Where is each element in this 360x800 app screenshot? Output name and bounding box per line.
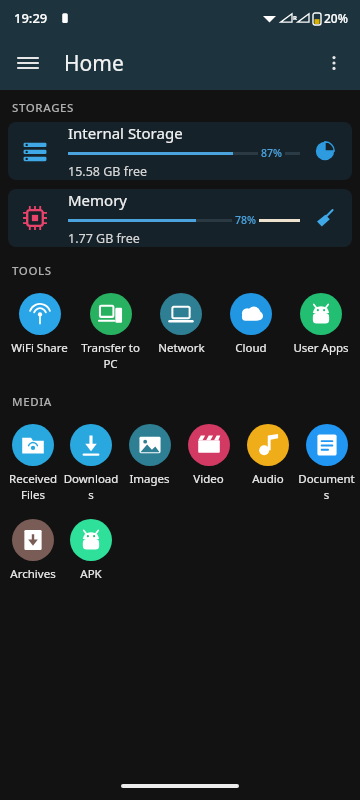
button[interactable]: Storage analysis [308,134,342,168]
staticText: Home [64,49,124,78]
button[interactable]: Archives [4,517,62,584]
staticText: Transfer to PC [75,340,146,372]
staticText: User Apps [293,340,349,356]
button[interactable]: Documents [297,422,356,505]
button[interactable]: Transfer to PC [75,291,146,374]
staticText: 1.77 GB free [68,230,140,247]
button[interactable]: Memory [8,189,352,247]
button[interactable]: Images [120,422,179,489]
staticText: TOOLS [12,263,52,279]
staticText: WiFi Share [11,340,68,356]
button[interactable]: Downloads [62,422,120,505]
staticText: 15.58 GB free [68,163,147,180]
staticText: 78% [235,213,256,227]
button[interactable]: WiFi Share [4,291,75,358]
button[interactable]: Clean memory [308,201,342,235]
button[interactable]: User Apps [286,291,356,358]
staticText: Downloads [62,471,120,503]
button[interactable]: Open navigation menu [8,43,48,83]
staticText: Network [158,340,205,356]
button[interactable]: Audio [238,422,297,489]
staticText: MEDIA [12,394,52,410]
staticText: Images [129,471,170,487]
button[interactable]: Internal Storage [8,122,352,180]
staticText: 87% [261,146,282,160]
staticText: Archives [10,566,56,582]
staticText: Internal Storage [68,123,183,143]
staticText: STORAGES [12,100,75,116]
staticText: Cloud [235,340,267,356]
staticText: Memory [68,190,128,210]
staticText: R [293,14,297,22]
button[interactable]: More options [314,43,354,83]
staticText: Audio [252,471,284,487]
staticText: Video [193,471,224,487]
button[interactable]: Cloud [216,291,286,358]
button[interactable]: Network [146,291,216,358]
staticText: 19:29 [14,9,48,27]
staticText: Received Files [4,471,62,503]
staticText: Documents [297,471,356,503]
button[interactable]: APK [62,517,120,584]
button[interactable]: Video [179,422,238,489]
staticText: APK [80,566,102,582]
staticText: 20% [324,10,348,26]
button[interactable]: Received Files [4,422,62,505]
